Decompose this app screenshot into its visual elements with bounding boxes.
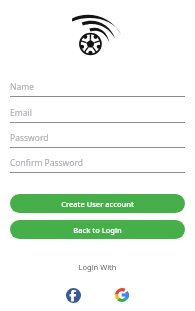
button[interactable]: Name (10, 78, 185, 97)
button[interactable]: Login with Google (110, 283, 134, 307)
button[interactable]: Password (10, 129, 185, 148)
button[interactable]: Login with Facebook (61, 283, 85, 307)
staticText: Login With (0, 262, 195, 272)
button[interactable]: Confirm Password (10, 154, 185, 173)
staticText: Back to Login (73, 225, 122, 235)
other: Soccer ball logo (71, 9, 125, 59)
staticText: Password (10, 132, 49, 144)
button[interactable]: Back to Login (10, 220, 185, 239)
button[interactable]: Email (10, 104, 185, 123)
staticText: Name (10, 81, 34, 93)
staticText: Create User account (61, 199, 134, 209)
button[interactable]: Create User account (10, 194, 185, 213)
staticText: Email (10, 107, 32, 119)
staticText: Confirm Password (10, 157, 83, 169)
